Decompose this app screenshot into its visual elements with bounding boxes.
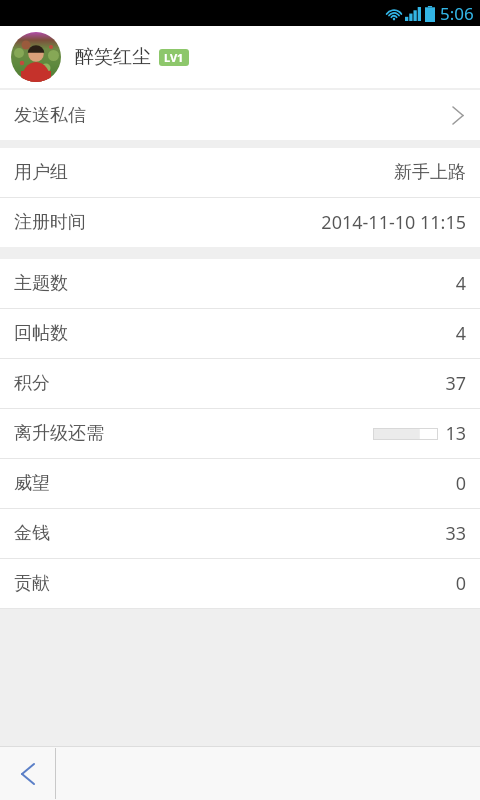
staticText: 2014-11-10 11:15 [321, 210, 466, 235]
button[interactable]: 注册时间 [0, 198, 480, 247]
staticText: 33 [445, 521, 466, 546]
staticText: 13 [445, 421, 466, 446]
staticText: 回帖数 [14, 322, 68, 345]
staticText: 4 [455, 321, 466, 346]
button[interactable]: 回帖数 [0, 309, 480, 358]
button[interactable]: 积分 [0, 359, 480, 408]
button[interactable]: 发送私信 [0, 90, 480, 140]
staticText: 5:06 [440, 2, 474, 25]
staticText: 用户组 [14, 161, 68, 184]
button[interactable]: 主题数 [0, 259, 480, 308]
staticText: 醉笑红尘 [75, 45, 151, 69]
button[interactable]: Back [0, 747, 55, 800]
staticText: 注册时间 [14, 211, 86, 234]
staticText: 新手上路 [394, 161, 466, 184]
staticText: 37 [445, 371, 466, 396]
staticText: 金钱 [14, 522, 50, 545]
staticText: 4 [455, 271, 466, 296]
button[interactable]: 用户组 [0, 148, 480, 197]
button[interactable]: 金钱 [0, 509, 480, 558]
staticText: LV1 [164, 50, 184, 65]
staticText: 发送私信 [14, 104, 86, 127]
staticText: 离升级还需 [14, 422, 104, 445]
staticText: 积分 [14, 372, 50, 395]
button[interactable]: 贡献 [0, 559, 480, 608]
button[interactable]: 威望 [0, 459, 480, 508]
staticText: 0 [455, 471, 466, 496]
staticText: 威望 [14, 472, 50, 495]
button[interactable]: 醉笑红尘 [0, 26, 480, 88]
button[interactable]: 离升级还需 [0, 409, 480, 458]
staticText: 贡献 [14, 572, 50, 595]
other: Open [453, 107, 463, 124]
staticText: 主题数 [14, 272, 68, 295]
staticText: 0 [455, 571, 466, 596]
